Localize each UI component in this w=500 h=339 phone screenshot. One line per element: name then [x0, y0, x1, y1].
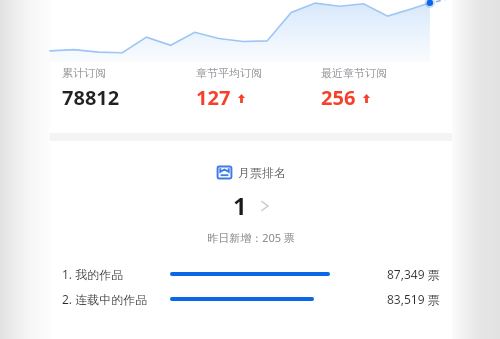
staticText: 127 [196, 84, 231, 111]
staticText: 256 [321, 84, 356, 111]
other: 查看月票排名详情 [260, 198, 270, 214]
staticText: 83,519 票 [387, 291, 440, 307]
button[interactable]: 月票排名 [50, 163, 452, 182]
button[interactable]: 最近章节订阅 [321, 66, 440, 111]
staticText: 1 [233, 189, 247, 222]
staticText: 累计订阅 [62, 66, 106, 80]
staticText: 87,349 票 [387, 266, 440, 282]
staticText: 1. 我的作品 [62, 266, 124, 282]
button[interactable]: 1. 我的作品 [50, 266, 452, 282]
button[interactable]: 2. 连载中的作品 [50, 291, 452, 307]
staticText: 昨日新增：205 票 [207, 230, 295, 245]
staticText: 月票排名 [238, 165, 286, 180]
staticText: 章节平均订阅 [196, 66, 262, 80]
button[interactable]: 1 [50, 189, 452, 222]
staticText: 2. 连载中的作品 [62, 291, 148, 307]
staticText: 78812 [62, 84, 120, 111]
button[interactable]: 累计订阅 [62, 66, 196, 111]
button[interactable]: 章节平均订阅 [196, 66, 321, 111]
staticText: 最近章节订阅 [321, 66, 387, 80]
